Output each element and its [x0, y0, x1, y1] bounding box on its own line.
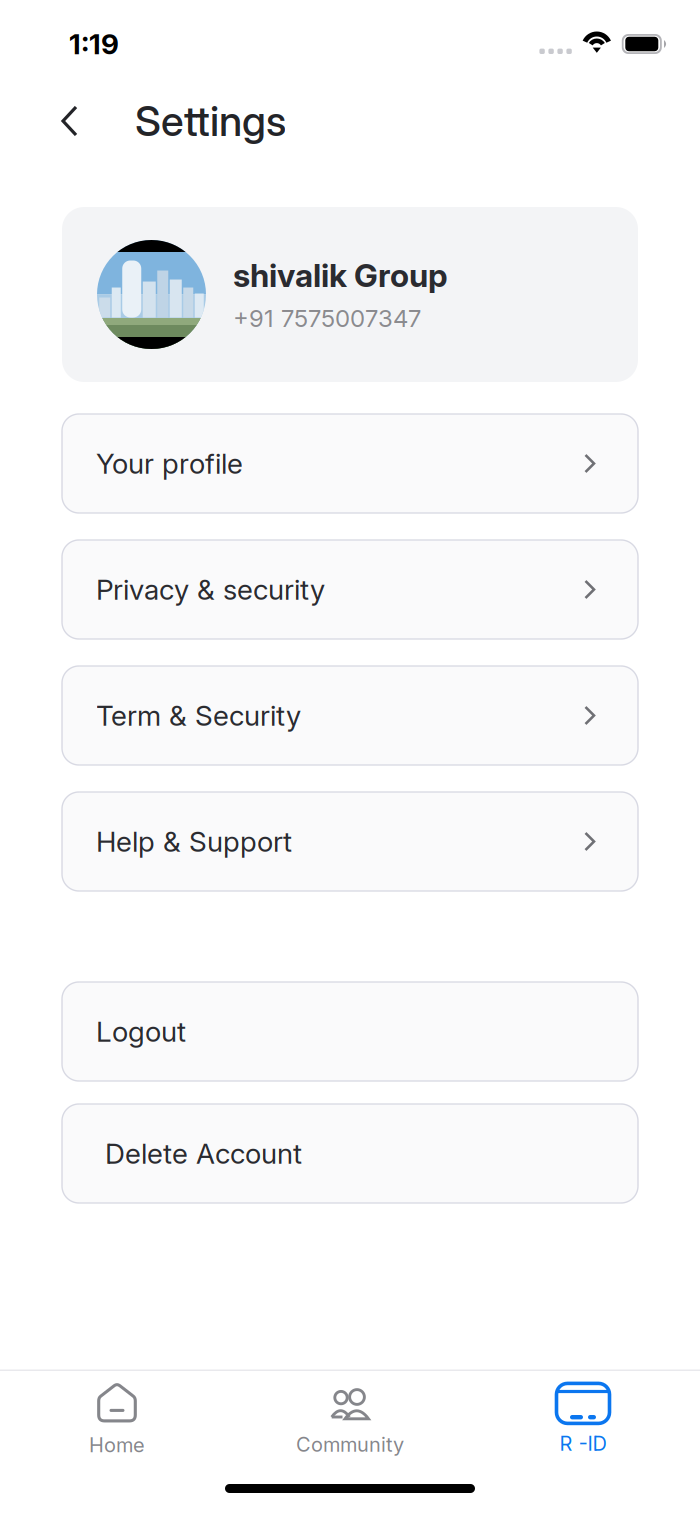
staticText: Community [296, 1432, 404, 1457]
staticText: Your profile [96, 447, 243, 480]
staticText: Settings [135, 96, 286, 146]
staticText: Help & Support [96, 825, 292, 858]
button[interactable]: Help & Support [62, 792, 638, 891]
staticText: Privacy & security [96, 573, 325, 606]
button[interactable]: Home [0, 1371, 233, 1462]
button[interactable]: R -ID [466, 1371, 699, 1462]
staticText: Logout [96, 1015, 186, 1048]
staticText: Home [89, 1433, 145, 1457]
button[interactable]: Community [233, 1371, 466, 1462]
button[interactable]: Your profile [62, 414, 638, 513]
staticText: Delete Account [105, 1137, 302, 1170]
button[interactable]: Back [46, 91, 94, 151]
button[interactable]: Privacy & security [62, 540, 638, 639]
staticText: Term & Security [96, 699, 301, 732]
button[interactable]: Delete Account [62, 1104, 638, 1203]
button[interactable]: Logout [62, 982, 638, 1081]
button[interactable]: Term & Security [62, 666, 638, 765]
button[interactable]: shivalik Group [62, 207, 638, 382]
staticText: +91 7575007347 [233, 304, 421, 333]
staticText: 1:19 [69, 27, 119, 61]
staticText: R -ID [559, 1431, 606, 1456]
staticText: shivalik Group [233, 256, 448, 295]
